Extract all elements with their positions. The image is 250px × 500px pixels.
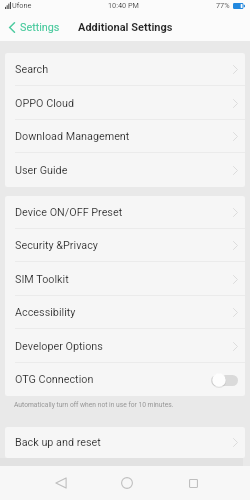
staticText: Back up and reset — [15, 436, 101, 449]
staticText: Download Management — [15, 130, 130, 143]
button[interactable]: Device ON/OFF Preset — [5, 196, 245, 229]
button[interactable]: Settings — [6, 17, 64, 38]
staticText: OTG Connection — [15, 373, 94, 386]
button[interactable]: Accessibility — [5, 296, 245, 329]
button[interactable]: Download Management — [5, 120, 245, 153]
staticText: Device ON/OFF Preset — [15, 206, 123, 219]
staticText: OPPO Cloud — [15, 97, 75, 110]
staticText: 77% — [216, 1, 230, 10]
button[interactable]: Recents — [160, 466, 226, 500]
staticText: Ufone — [12, 1, 32, 10]
staticText: Accessibility — [15, 306, 76, 319]
staticText: Developer Options — [15, 340, 103, 353]
staticText: User Guide — [15, 164, 68, 177]
staticText: Automatically turn off when not in use f… — [14, 401, 174, 409]
button[interactable]: OPPO Cloud — [5, 86, 245, 120]
staticText: Security &Privacy — [15, 239, 98, 252]
button[interactable]: OTG Connection — [5, 363, 245, 396]
staticText: 10:40 PM — [108, 1, 139, 10]
staticText: Settings — [20, 21, 60, 34]
staticText: Additional Settings — [78, 21, 173, 34]
button[interactable]: Developer Options — [5, 329, 245, 363]
staticText: Search — [15, 63, 49, 76]
button[interactable]: Back — [27, 466, 94, 500]
button[interactable]: Home — [94, 466, 160, 500]
button[interactable]: Back up and reset — [5, 427, 245, 458]
button[interactable]: Security &Privacy — [5, 229, 245, 262]
staticText: SIM Toolkit — [15, 273, 69, 286]
button[interactable]: Search — [5, 53, 245, 86]
button[interactable]: User Guide — [5, 153, 245, 187]
button[interactable]: SIM Toolkit — [5, 262, 245, 296]
